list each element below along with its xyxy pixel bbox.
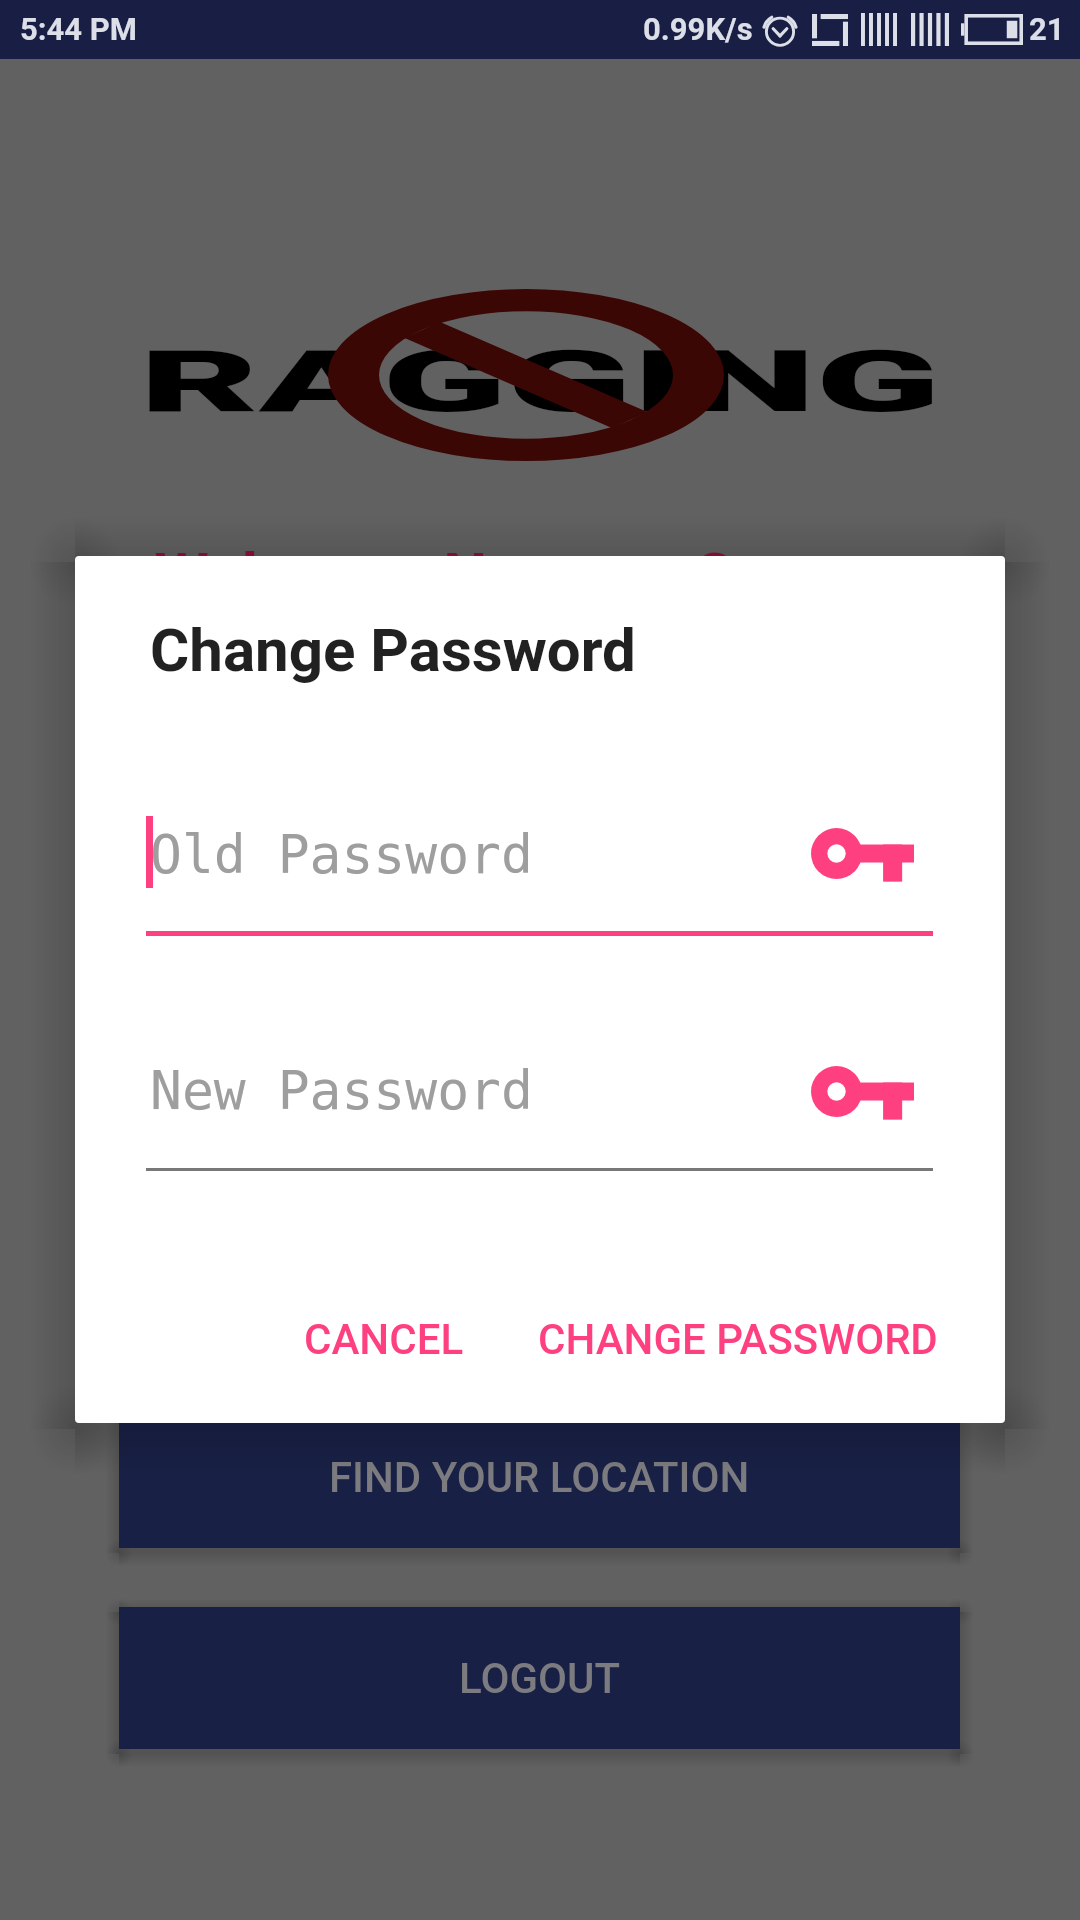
staticText: 5:44 PM xyxy=(20,11,137,47)
staticText: Old Password xyxy=(150,824,533,886)
staticText: 21 xyxy=(1029,11,1065,47)
staticText: FIND YOUR LOCATION xyxy=(329,1453,750,1502)
button[interactable]: New Password field xyxy=(146,1050,933,1176)
button[interactable]: FIND YOUR LOCATION xyxy=(119,1406,960,1548)
button[interactable]: CANCEL xyxy=(268,1291,500,1388)
button[interactable]: CHANGE PASSWORD xyxy=(502,1291,974,1388)
staticText: CHANGE PASSWORD xyxy=(538,1315,938,1364)
staticText: Welcome Name to Connect xyxy=(0,539,1080,612)
staticText: CANCEL xyxy=(304,1315,464,1364)
staticText: LOGOUT xyxy=(459,1654,620,1703)
button[interactable]: Old Password field xyxy=(146,814,933,940)
staticText: RAGGING xyxy=(0,331,1080,432)
staticText: New Password xyxy=(150,1060,533,1122)
button[interactable]: LOGOUT xyxy=(119,1607,960,1749)
staticText: Change Password xyxy=(150,615,636,685)
staticText: 0.99K/s xyxy=(643,11,753,47)
